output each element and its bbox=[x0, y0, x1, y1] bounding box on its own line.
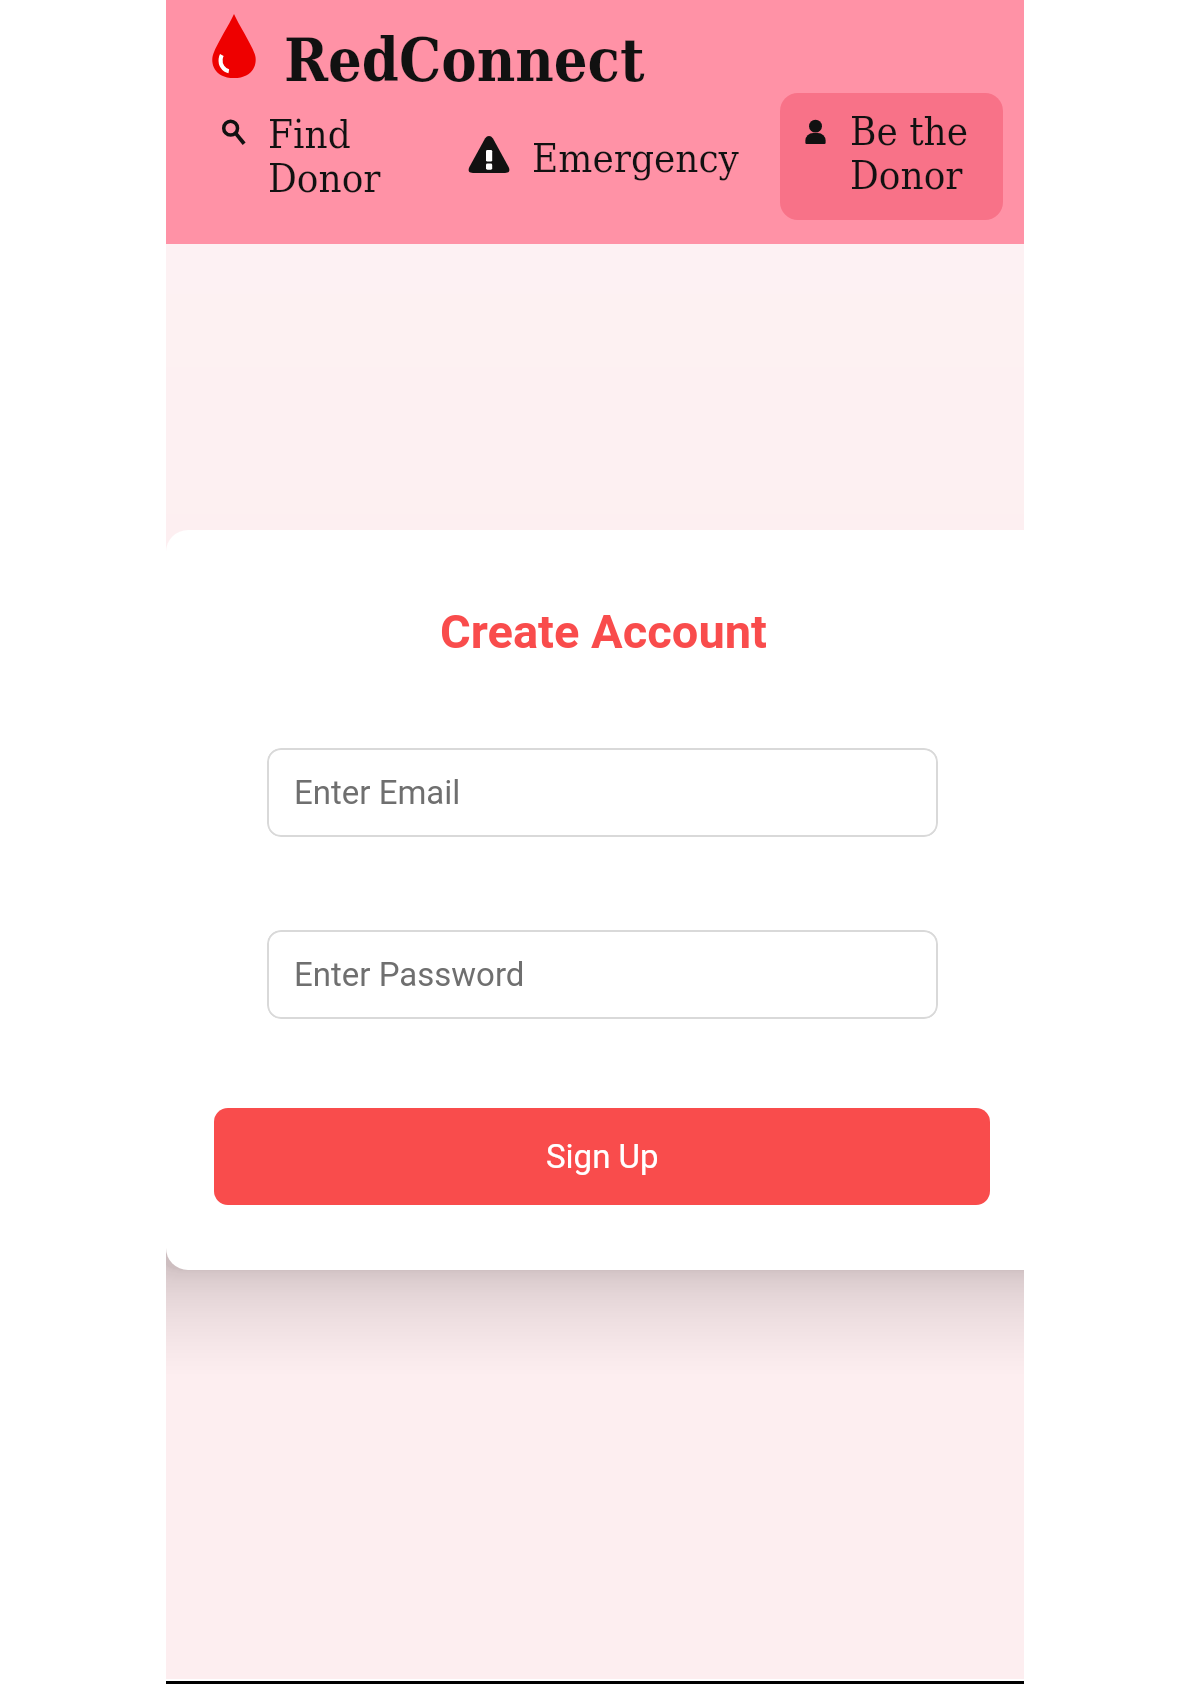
staticText: Enter Email bbox=[294, 773, 461, 812]
staticText: Sign Up bbox=[546, 1137, 659, 1176]
staticText: Find Donor bbox=[268, 111, 381, 202]
other: Find Donor bbox=[221, 118, 247, 146]
staticText: Be the Donor bbox=[850, 108, 969, 199]
other: Be the Donor bbox=[804, 119, 827, 144]
button[interactable]: Enter Email bbox=[267, 748, 938, 837]
staticText: Emergency bbox=[532, 135, 739, 182]
staticText: Enter Password bbox=[294, 955, 525, 994]
button[interactable]: Be the Donor bbox=[780, 93, 1003, 220]
other: Emergency bbox=[469, 136, 509, 173]
staticText: Create Account bbox=[440, 604, 767, 659]
button[interactable]: Sign Up bbox=[214, 1108, 990, 1205]
button[interactable]: Find Donor bbox=[216, 110, 402, 202]
button[interactable]: Enter Password bbox=[267, 930, 938, 1019]
staticText: RedConnect bbox=[284, 26, 645, 95]
button[interactable]: Emergency bbox=[464, 128, 739, 182]
